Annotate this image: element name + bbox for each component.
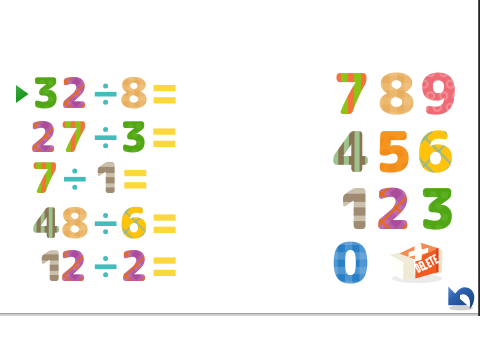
button[interactable]: Undo — [444, 283, 478, 313]
button[interactable]: Problem 1 — [14, 72, 184, 112]
button[interactable]: Problem 4 — [14, 201, 184, 241]
button[interactable]: 7 — [330, 70, 372, 116]
button[interactable]: 3 — [415, 185, 457, 231]
button[interactable]: 4 — [330, 128, 372, 174]
button[interactable]: Delete — [388, 241, 444, 283]
button[interactable]: Problem 2 — [14, 115, 184, 155]
button[interactable]: 5 — [373, 128, 415, 174]
button[interactable]: Problem 3 — [14, 158, 184, 198]
button[interactable]: 9 — [415, 70, 457, 116]
button[interactable]: 1 — [330, 185, 372, 231]
button[interactable]: 6 — [415, 128, 457, 174]
button[interactable]: Problem 5 — [14, 244, 184, 284]
button[interactable]: 2 — [373, 185, 415, 231]
button[interactable]: 8 — [373, 70, 415, 116]
button[interactable]: 0 — [330, 240, 372, 286]
